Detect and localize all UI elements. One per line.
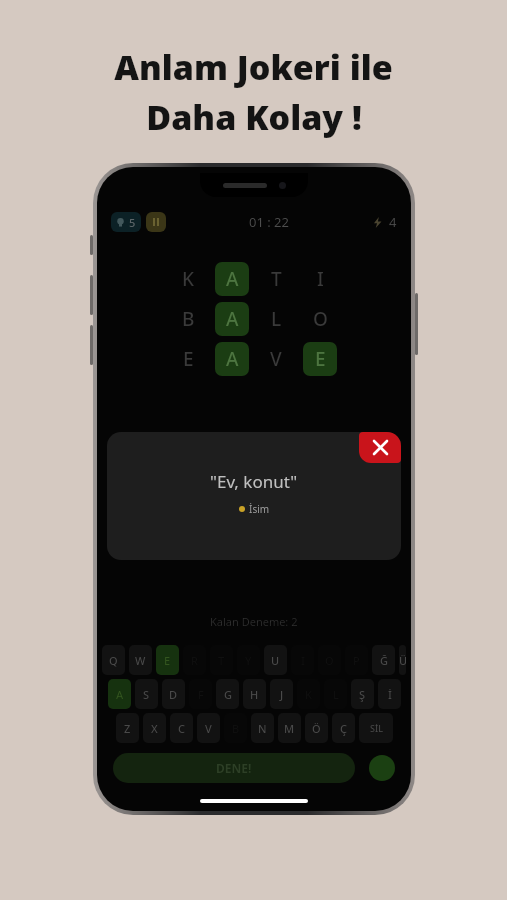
- staticText: V: [270, 346, 282, 372]
- staticText: Ü: [399, 653, 406, 668]
- staticText: T: [271, 266, 282, 292]
- button[interactable]: Q: [102, 645, 125, 675]
- staticText: SİL: [370, 722, 383, 734]
- button[interactable]: V: [197, 713, 220, 743]
- button[interactable]: Ç: [332, 713, 355, 743]
- staticText: İsim: [249, 502, 270, 516]
- staticText: N: [258, 721, 267, 736]
- staticText: E: [183, 346, 194, 372]
- button[interactable]: E: [156, 645, 179, 675]
- staticText: C: [178, 721, 185, 736]
- staticText: K: [182, 266, 195, 292]
- staticText: M: [284, 721, 295, 736]
- staticText: X: [151, 721, 158, 736]
- staticText: Kalan Deneme: 2: [210, 614, 298, 629]
- staticText: A: [116, 687, 124, 702]
- button[interactable]: SİL: [359, 713, 393, 743]
- staticText: H: [250, 687, 259, 702]
- staticText: İ: [388, 687, 392, 702]
- button[interactable]: Pause: [146, 212, 166, 232]
- button[interactable]: S: [135, 679, 158, 709]
- button[interactable]: U: [264, 645, 287, 675]
- button[interactable]: İ: [378, 679, 401, 709]
- button[interactable]: Hint: [369, 755, 395, 781]
- staticText: V: [205, 721, 212, 736]
- button[interactable]: Ğ: [372, 645, 395, 675]
- staticText: Q: [109, 653, 118, 668]
- staticText: "Ev, konut": [210, 470, 298, 493]
- staticText: A: [226, 306, 239, 332]
- staticText: U: [271, 653, 280, 668]
- button[interactable]: Z: [116, 713, 139, 743]
- button[interactable]: Ş: [351, 679, 374, 709]
- button[interactable]: A: [108, 679, 131, 709]
- staticText: J: [280, 687, 284, 702]
- button[interactable]: G: [216, 679, 239, 709]
- staticText: W: [135, 653, 146, 668]
- staticText: A: [226, 266, 239, 292]
- staticText: S: [143, 687, 150, 702]
- button[interactable]: X: [143, 713, 166, 743]
- staticText: 4: [389, 213, 397, 231]
- staticText: I: [317, 266, 324, 292]
- staticText: 01 : 22: [249, 213, 289, 231]
- staticText: A: [226, 346, 239, 372]
- button[interactable]: DENE!: [113, 753, 355, 783]
- staticText: Anlam Jokeri ile: [114, 44, 393, 90]
- staticText: Ç: [340, 721, 347, 736]
- button[interactable]: Ü: [399, 645, 406, 675]
- button[interactable]: W: [129, 645, 152, 675]
- staticText: G: [224, 687, 232, 702]
- button[interactable]: Ö: [305, 713, 328, 743]
- staticText: E: [315, 346, 326, 372]
- button[interactable]: C: [170, 713, 193, 743]
- button[interactable]: D: [162, 679, 185, 709]
- staticText: B: [182, 306, 195, 332]
- staticText: DENE!: [216, 760, 252, 776]
- staticText: Ğ: [380, 653, 388, 668]
- staticText: E: [164, 653, 171, 668]
- staticText: D: [169, 687, 178, 702]
- staticText: O: [313, 306, 328, 332]
- button[interactable]: H: [243, 679, 266, 709]
- staticText: Ö: [312, 721, 321, 736]
- button[interactable]: J: [270, 679, 293, 709]
- staticText: 5: [129, 215, 136, 230]
- button[interactable]: M: [278, 713, 301, 743]
- button[interactable]: N: [251, 713, 274, 743]
- staticText: Z: [124, 721, 131, 736]
- button[interactable]: Close: [359, 432, 401, 463]
- button[interactable]: 5: [111, 212, 141, 232]
- staticText: L: [271, 306, 282, 332]
- staticText: Daha Kolay !: [146, 94, 362, 140]
- staticText: Ş: [359, 687, 366, 702]
